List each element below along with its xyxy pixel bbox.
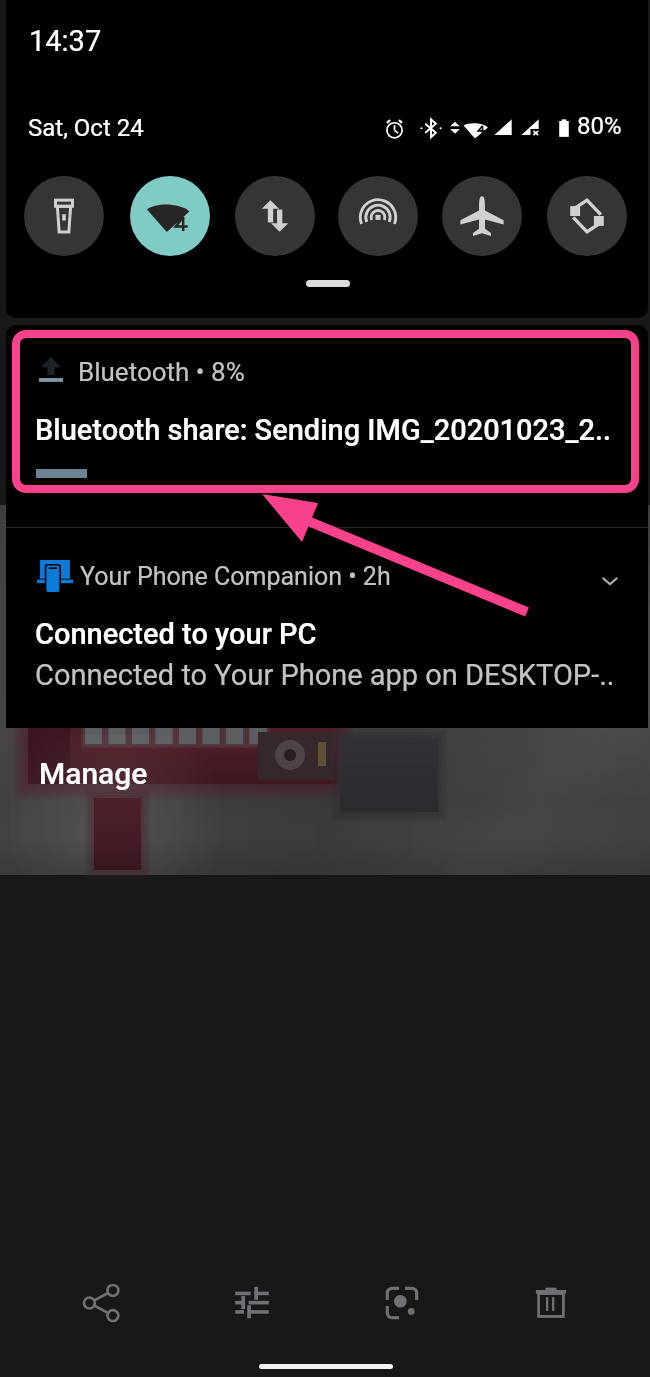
- button[interactable]: Expand notification: [588, 559, 632, 603]
- staticText: Manage: [39, 756, 148, 791]
- button[interactable]: Hotspot: [338, 176, 418, 256]
- button[interactable]: Auto-rotate: [547, 176, 627, 256]
- button[interactable]: Manage: [26, 743, 161, 804]
- staticText: Your Phone Companion • 2h: [80, 562, 391, 591]
- button[interactable]: Flashlight: [24, 176, 104, 256]
- button[interactable]: Your Phone Companion • 2h: [6, 528, 648, 728]
- staticText: Sat, Oct 24: [28, 114, 144, 142]
- button[interactable]: Adjust: [212, 1263, 292, 1343]
- staticText: Connected to Your Phone app on DESKTOP-.…: [35, 658, 645, 692]
- button[interactable]: Lens: [362, 1263, 442, 1343]
- staticText: 14:37: [29, 24, 102, 58]
- button[interactable]: Airplane mode: [442, 176, 522, 256]
- staticText: Bluetooth • 8%: [78, 357, 245, 387]
- button[interactable]: Share: [62, 1263, 142, 1343]
- button[interactable]: Delete: [511, 1263, 591, 1343]
- staticText: 80%: [577, 112, 622, 140]
- button[interactable]: Data usage: [235, 176, 315, 256]
- button[interactable]: Wi-Fi: [130, 176, 210, 256]
- staticText: Bluetooth share: Sending IMG_20201023_2.…: [35, 413, 645, 447]
- staticText: Connected to your PC: [35, 617, 317, 651]
- button[interactable]: Bluetooth • 8%: [6, 325, 648, 528]
